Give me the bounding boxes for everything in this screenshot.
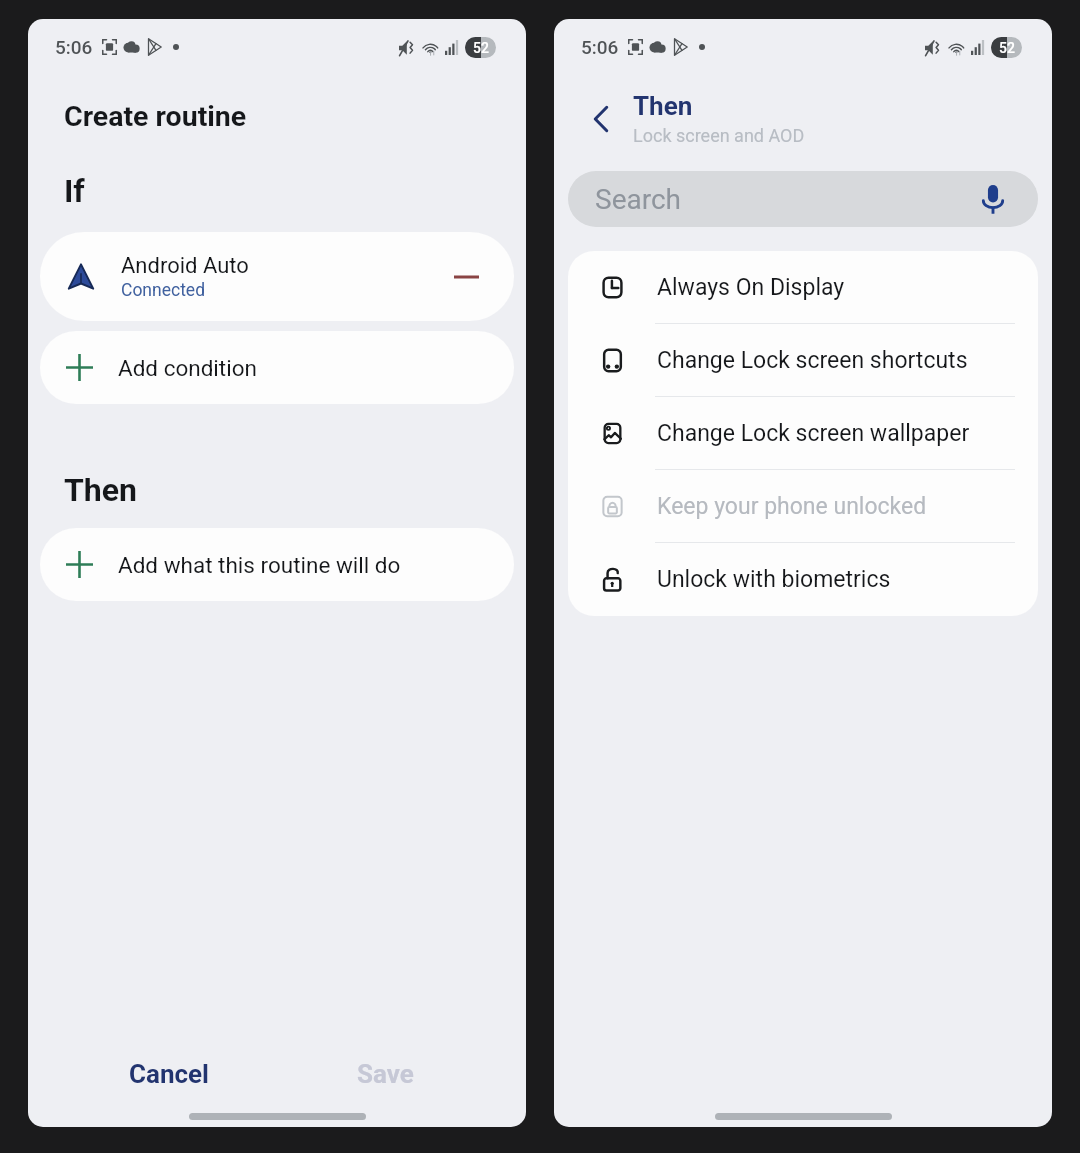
staticText: If [64, 172, 85, 210]
staticText: Add condition [118, 355, 257, 381]
staticText: Lock screen and AOD [633, 125, 805, 146]
button[interactable]: Change Lock screen wallpaper [568, 397, 1038, 469]
staticText: Connected [121, 280, 206, 301]
staticText: Then [64, 471, 137, 509]
button[interactable]: Remove condition [450, 261, 482, 293]
button[interactable]: Cancel [103, 1049, 235, 1099]
staticText: Unlock with biometrics [657, 566, 891, 593]
button[interactable]: Back [579, 97, 623, 141]
button[interactable]: Add condition [40, 331, 514, 404]
button[interactable]: Add what this routine will do [40, 528, 514, 601]
button[interactable]: Android Auto [40, 232, 514, 321]
staticText: Create routine [64, 100, 247, 133]
button[interactable]: Always On Display [568, 251, 1038, 323]
staticText: 5:06 [581, 36, 619, 58]
staticText: Android Auto [121, 253, 249, 279]
button[interactable]: Unlock with biometrics [568, 543, 1038, 616]
staticText: Then [633, 91, 693, 121]
staticText: Change Lock screen wallpaper [657, 420, 970, 447]
staticText: Cancel [129, 1059, 209, 1089]
staticText: 5:06 [55, 36, 93, 58]
staticText: Change Lock screen shortcuts [657, 347, 968, 374]
button[interactable]: Change Lock screen shortcuts [568, 324, 1038, 396]
staticText: Save [357, 1059, 414, 1089]
button[interactable]: Keep your phone unlocked [568, 470, 1038, 542]
staticText: 52 [473, 40, 489, 56]
button[interactable]: Save [331, 1049, 440, 1099]
staticText: Search [595, 183, 682, 216]
staticText: Keep your phone unlocked [657, 493, 927, 520]
button[interactable]: Search [568, 171, 1038, 227]
staticText: Add what this routine will do [118, 552, 401, 578]
staticText: Always On Display [657, 274, 845, 301]
staticText: 52 [999, 40, 1015, 56]
button[interactable]: Voice search [976, 182, 1010, 216]
